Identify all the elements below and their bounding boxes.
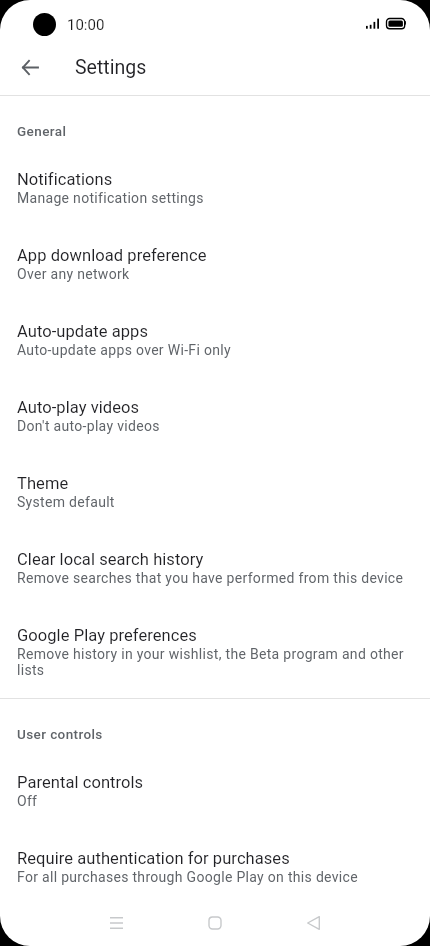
staticText: User controls: [17, 725, 103, 743]
staticText: Off: [17, 793, 38, 809]
button[interactable]: Require authentication for purchases: [0, 827, 430, 903]
button[interactable]: App download preference: [0, 224, 430, 300]
staticText: Auto-play videos: [17, 393, 140, 418]
button[interactable]: Back: [291, 901, 335, 945]
staticText: Remove history in your wishlist, the Bet…: [17, 646, 410, 678]
staticText: 10:00: [67, 16, 105, 34]
staticText: Settings: [75, 56, 147, 79]
button[interactable]: Notifications: [0, 148, 430, 224]
button[interactable]: Clear local search history: [0, 528, 430, 604]
staticText: Manage notification settings: [17, 190, 204, 206]
staticText: Notifications: [17, 165, 113, 190]
staticText: Clear local search history: [17, 545, 204, 570]
staticText: Require authentication for purchases: [17, 844, 290, 869]
staticText: For all purchases through Google Play on…: [17, 869, 358, 885]
staticText: System default: [17, 494, 115, 510]
button[interactable]: Recent apps: [94, 901, 138, 945]
staticText: Remove searches that you have performed …: [17, 570, 404, 586]
staticText: Auto-update apps: [17, 317, 149, 342]
button[interactable]: Back: [10, 47, 50, 87]
staticText: App download preference: [17, 241, 207, 266]
staticText: Auto-update apps over Wi-Fi only: [17, 342, 231, 358]
button[interactable]: Auto-update apps: [0, 300, 430, 376]
button[interactable]: Google Play preferences: [0, 604, 430, 696]
staticText: Over any network: [17, 266, 130, 282]
button[interactable]: Auto-play videos: [0, 376, 430, 452]
staticText: Theme: [17, 469, 69, 494]
button[interactable]: Home: [193, 901, 237, 945]
staticText: Google Play preferences: [17, 621, 197, 646]
staticText: Don't auto-play videos: [17, 418, 160, 434]
staticText: Parental controls: [17, 768, 144, 793]
button[interactable]: Theme: [0, 452, 430, 528]
button[interactable]: Parental controls: [0, 751, 430, 827]
staticText: General: [17, 122, 67, 140]
